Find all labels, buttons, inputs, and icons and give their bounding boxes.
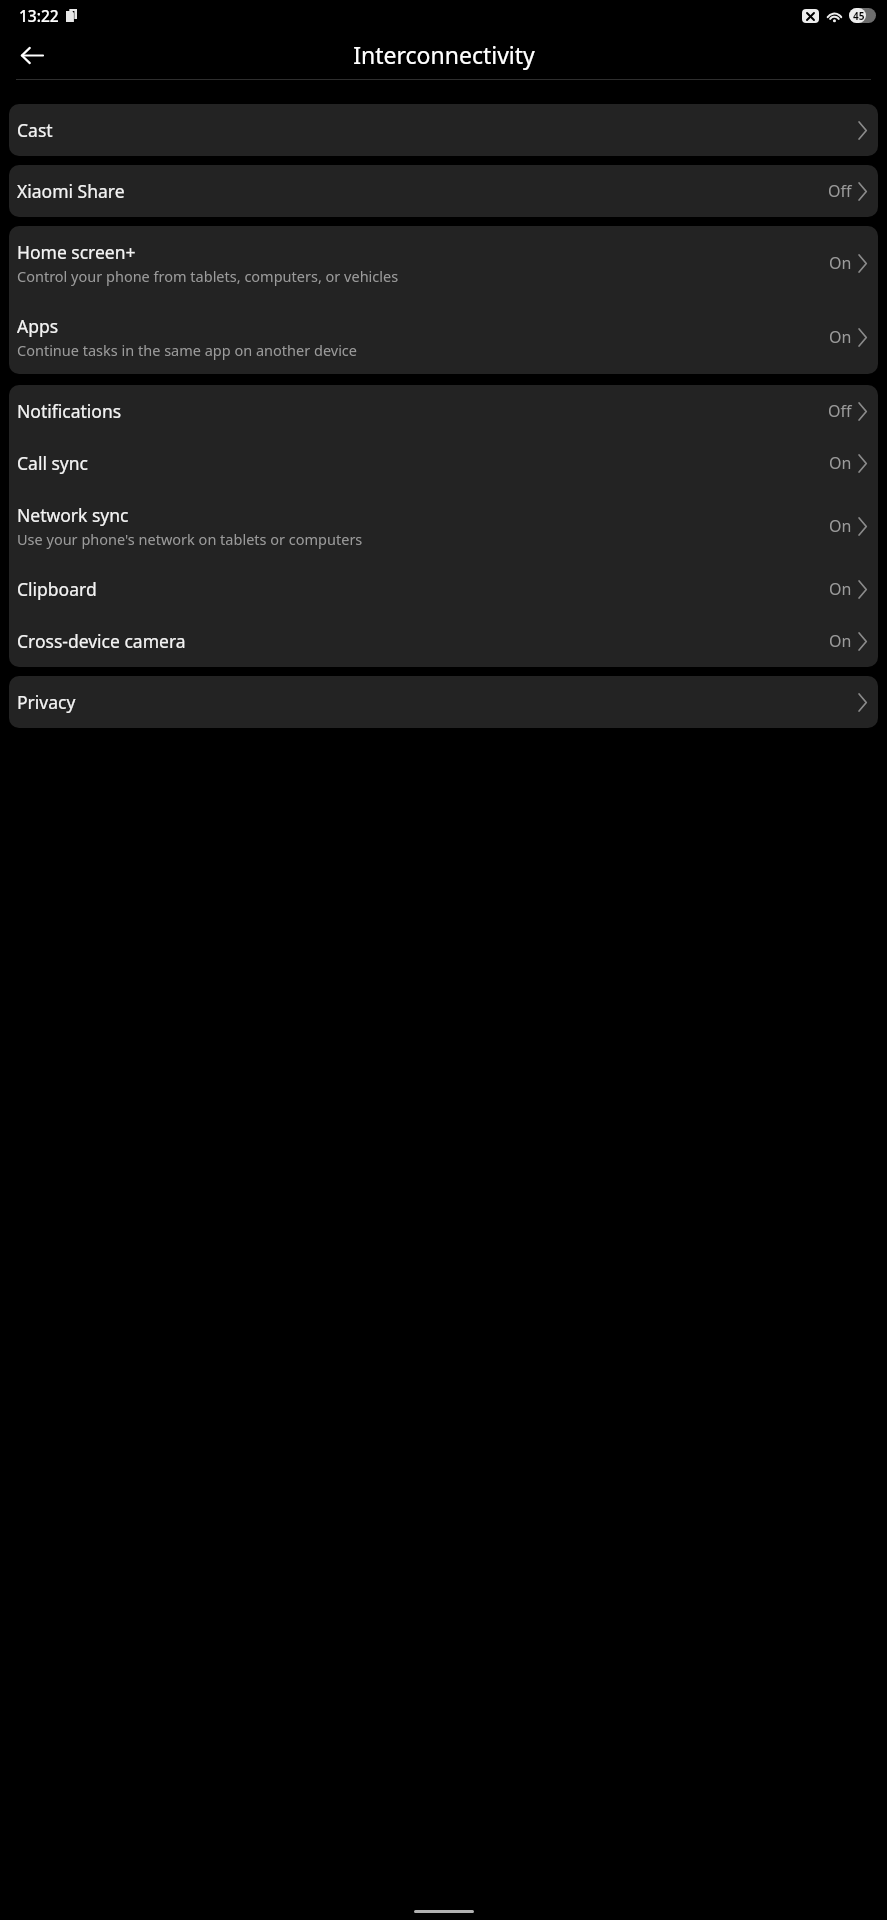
- staticText: On: [829, 452, 852, 474]
- staticText: Home screen+: [17, 240, 136, 264]
- staticText: Privacy: [17, 690, 76, 714]
- staticText: Continue tasks in the same app on anothe…: [17, 340, 358, 360]
- staticText: Off: [828, 400, 852, 422]
- button[interactable]: Network sync: [9, 489, 878, 563]
- staticText: On: [829, 252, 852, 274]
- staticText: 13:22: [19, 5, 59, 26]
- button[interactable]: Clipboard: [9, 563, 878, 615]
- staticText: Interconnectivity: [353, 39, 535, 70]
- staticText: On: [829, 515, 852, 537]
- staticText: Clipboard: [17, 577, 97, 601]
- button[interactable]: Call sync: [9, 437, 878, 489]
- staticText: Use your phone's network on tablets or c…: [17, 529, 363, 549]
- staticText: Off: [828, 180, 852, 202]
- staticText: Network sync: [17, 503, 129, 527]
- staticText: On: [829, 578, 852, 600]
- button[interactable]: Back: [12, 35, 52, 75]
- staticText: Cross-device camera: [17, 629, 186, 653]
- button[interactable]: Cast: [9, 104, 878, 156]
- button[interactable]: Xiaomi Share: [9, 165, 878, 217]
- button[interactable]: Notifications: [9, 385, 878, 437]
- button[interactable]: Cross-device camera: [9, 615, 878, 667]
- button[interactable]: Apps: [9, 300, 878, 374]
- staticText: Cast: [17, 118, 53, 142]
- staticText: Control your phone from tablets, compute…: [17, 266, 399, 286]
- staticText: Notifications: [17, 399, 122, 423]
- button[interactable]: Home screen+: [9, 226, 878, 300]
- staticText: Xiaomi Share: [17, 179, 125, 203]
- staticText: Call sync: [17, 451, 88, 475]
- staticText: Apps: [17, 314, 59, 338]
- staticText: 45: [853, 9, 865, 23]
- staticText: On: [829, 630, 852, 652]
- staticText: On: [829, 326, 852, 348]
- button[interactable]: Privacy: [9, 676, 878, 728]
